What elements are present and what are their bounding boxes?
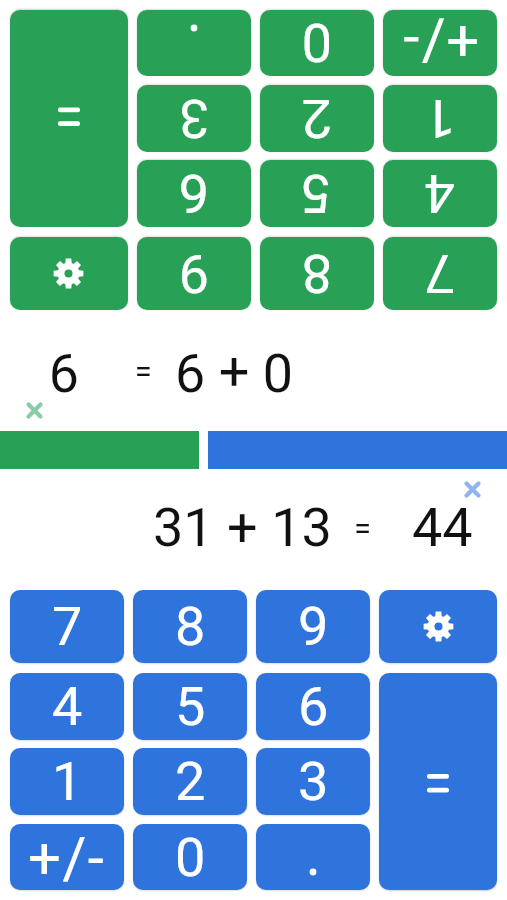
button[interactable]: 8 xyxy=(260,237,374,310)
button[interactable]: 2 xyxy=(260,85,374,152)
staticText: = xyxy=(134,354,152,390)
staticText: 2 xyxy=(301,87,332,150)
button[interactable]: +/- xyxy=(10,824,124,890)
button[interactable]: 8 xyxy=(133,590,247,663)
button[interactable]: 1 xyxy=(10,748,124,815)
button[interactable] xyxy=(465,482,480,497)
button[interactable] xyxy=(379,673,497,890)
button[interactable]: 3 xyxy=(256,748,370,815)
staticText: 8 xyxy=(301,242,332,305)
staticText: 2 xyxy=(175,750,206,813)
button[interactable] xyxy=(27,403,42,418)
button[interactable] xyxy=(137,10,251,76)
staticText: 8 xyxy=(175,595,206,658)
staticText: 9 xyxy=(178,242,209,305)
staticText: 9 xyxy=(298,595,329,658)
button[interactable]: 0 xyxy=(133,824,247,890)
button[interactable]: 4 xyxy=(383,160,497,227)
button[interactable]: 7 xyxy=(383,237,497,310)
button[interactable]: 6 xyxy=(137,160,251,227)
staticText: 4 xyxy=(52,675,83,738)
button[interactable] xyxy=(256,824,370,890)
button[interactable]: 7 xyxy=(10,590,124,663)
staticText: 44 xyxy=(412,496,473,559)
staticText: 5 xyxy=(301,162,332,225)
staticText: 5 xyxy=(175,675,206,738)
button[interactable]: 1 xyxy=(383,85,497,152)
button[interactable]: 4 xyxy=(10,673,124,740)
staticText: 0 xyxy=(301,11,332,74)
button[interactable]: 5 xyxy=(133,673,247,740)
button[interactable]: 9 xyxy=(256,590,370,663)
staticText: = xyxy=(354,510,372,546)
staticText: +/- xyxy=(28,824,106,890)
button[interactable] xyxy=(379,590,497,663)
staticText: +/- xyxy=(401,10,479,76)
staticText: 31 + 13 xyxy=(153,496,332,559)
button[interactable]: 6 xyxy=(256,673,370,740)
button[interactable]: 5 xyxy=(260,160,374,227)
staticText: 9 xyxy=(48,341,79,404)
button[interactable]: +/- xyxy=(383,10,497,76)
staticText: 4 xyxy=(424,162,455,225)
button[interactable]: 9 xyxy=(137,237,251,310)
button[interactable]: 3 xyxy=(137,85,251,152)
button[interactable] xyxy=(10,237,128,310)
staticText: 7 xyxy=(424,242,455,305)
staticText: 3 xyxy=(298,750,329,813)
staticText: 0 + 9 xyxy=(174,341,293,404)
staticText: 0 xyxy=(175,826,206,889)
staticText: 6 xyxy=(298,675,329,738)
staticText: 6 xyxy=(178,162,209,225)
button[interactable]: 2 xyxy=(133,748,247,815)
staticText: 7 xyxy=(52,595,83,658)
button[interactable] xyxy=(10,10,128,227)
staticText: 3 xyxy=(178,87,209,150)
staticText: 1 xyxy=(52,750,83,813)
button[interactable]: 0 xyxy=(260,10,374,76)
staticText: 1 xyxy=(424,87,455,150)
